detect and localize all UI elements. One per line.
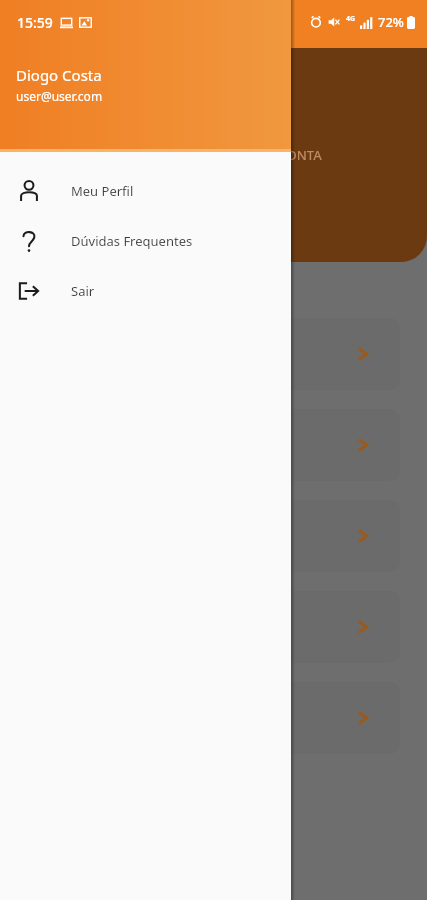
button[interactable]: Abrir (24, 682, 400, 754)
staticText: user@user.com (16, 88, 103, 104)
button[interactable]: Abrir (24, 318, 400, 390)
other: Dúvidas Frequentes (17, 229, 41, 253)
staticText: Dúvidas Frequentes (71, 232, 193, 250)
other: Abrir (354, 618, 372, 636)
staticText: Sair (71, 282, 95, 300)
staticText: Diogo Costa (16, 65, 102, 85)
staticText: Meu Perfil (71, 182, 134, 200)
other: Abrir (354, 527, 372, 545)
button[interactable]: Abrir (24, 500, 400, 572)
button[interactable]: Dúvidas Frequentes (0, 216, 291, 266)
other: Abrir (354, 709, 372, 727)
button[interactable]: Sair (0, 266, 291, 316)
staticText: SUA CONTA (250, 146, 322, 164)
other: Abrir (354, 436, 372, 454)
other: Meu Perfil (17, 179, 41, 203)
staticText: 72% (378, 13, 404, 31)
button[interactable]: Meu Perfil (0, 166, 291, 216)
button[interactable]: Abrir (24, 591, 400, 663)
button[interactable]: Abrir (24, 409, 400, 481)
staticText: 4G (346, 14, 356, 24)
other: Sair (17, 279, 41, 303)
staticText: 15:59 (17, 13, 53, 32)
other: Abrir (354, 345, 372, 363)
